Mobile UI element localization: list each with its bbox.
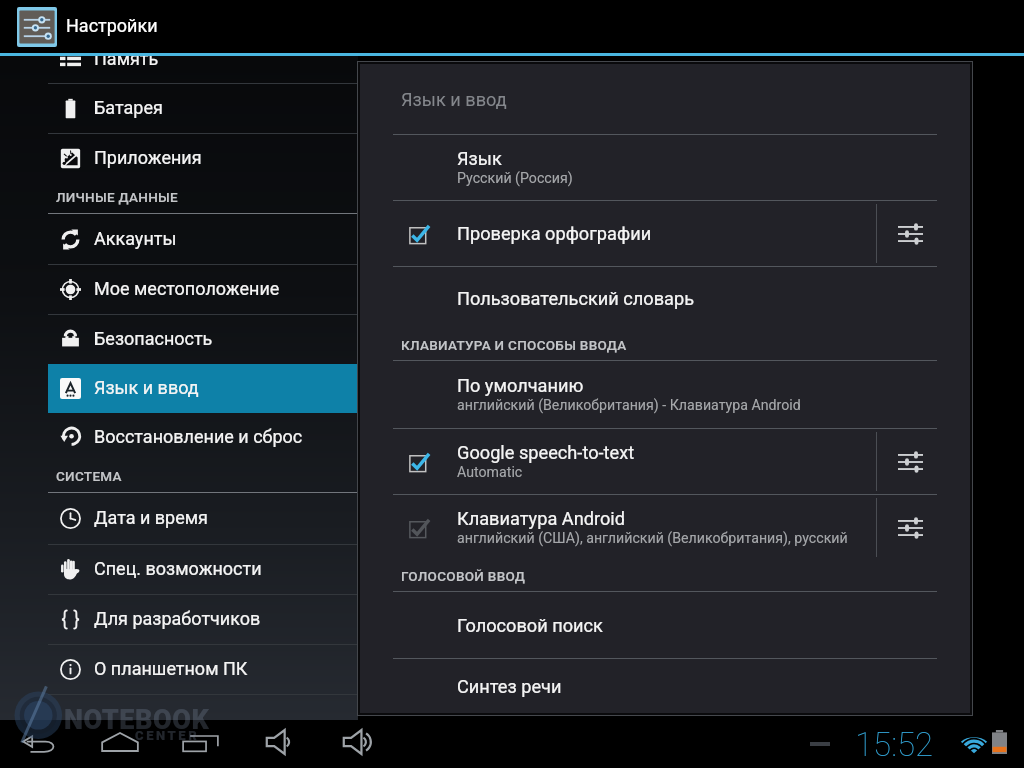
staticText: 15:52 [855,725,934,764]
button[interactable]: О планшетном ПК [48,645,358,694]
button[interactable]: Settings [876,429,970,494]
staticText: NOTEBOOK [64,704,210,736]
staticText: СИСТЕМА [56,468,122,484]
button[interactable]: Батарея [48,84,358,133]
staticText: Пользовательский словарь [457,288,695,309]
button[interactable]: Settings [876,495,970,560]
button[interactable]: Мое местоположение [48,265,358,314]
staticText: КЛАВИАТУРА И СПОСОБЫ ВВОДА [401,337,627,353]
staticText: Google speech-to-text [457,442,635,463]
staticText: Мое местоположение [94,278,280,299]
staticText: Батарея [94,97,163,118]
button[interactable]: Безопасность [48,315,358,364]
button[interactable]: Wi-Fi [960,732,988,755]
staticText: Спец. возможности [94,558,262,579]
button[interactable]: Голосовой поиск [360,592,970,658]
staticText: ГОЛОСОВОЙ ВВОД [401,568,526,584]
staticText: Приложения [94,147,202,168]
button[interactable]: Volume down [258,721,301,763]
staticText: ЛИЧНЫЕ ДАННЫЕ [56,189,179,205]
staticText: Язык [457,148,502,169]
button[interactable]: Проверка орфографии [360,201,970,266]
staticText: Для разработчиков [94,608,261,629]
staticText: CENTER [135,728,200,743]
button[interactable]: Аккаунты [48,214,358,264]
button[interactable]: Дата и время [48,493,358,544]
staticText: Automatic [457,464,523,481]
button[interactable]: Volume up [335,721,382,763]
staticText: Язык и ввод [401,89,507,110]
staticText: О планшетном ПК [94,658,248,679]
staticText: Язык и ввод [94,377,199,398]
staticText: Безопасность [94,328,213,349]
button[interactable]: Google speech-to-text [360,429,970,494]
staticText: Голосовой поиск [457,615,603,636]
staticText: Проверка орфографии [457,223,652,244]
button[interactable]: Спец. возможности [48,545,358,594]
staticText: Синтез речи [457,676,562,697]
button[interactable]: Notifications [800,730,840,758]
button[interactable]: Синтез речи [360,659,970,713]
button[interactable]: Recent apps [174,727,227,760]
staticText: Клавиатура Android [457,508,626,529]
button[interactable]: По умолчанию [360,361,970,428]
staticText: Дата и время [94,507,208,528]
button[interactable]: Язык [360,135,970,200]
staticText: По умолчанию [457,375,584,396]
button[interactable]: Восстановление и сброс [48,413,358,462]
button[interactable]: Settings [876,201,970,266]
button[interactable]: Клавиатура Android [360,495,970,560]
staticText: Настройки [66,15,158,36]
button[interactable]: Home [93,724,147,760]
button[interactable]: Back [15,728,65,761]
button[interactable]: Язык и ввод [48,364,358,413]
button[interactable]: Settings app icon [17,7,57,47]
staticText: английский (Великобритания) - Клавиатура… [457,397,801,414]
button[interactable]: Приложения [48,134,358,183]
staticText: английский (США), английский (Великобрит… [457,530,848,547]
button[interactable]: Для разработчиков [48,595,358,644]
staticText: Восстановление и сброс [94,426,303,447]
staticText: Память [94,56,159,69]
staticText: Аккаунты [94,228,177,249]
staticText: Русский (Россия) [457,170,573,187]
button[interactable]: Пользовательский словарь [360,267,970,329]
